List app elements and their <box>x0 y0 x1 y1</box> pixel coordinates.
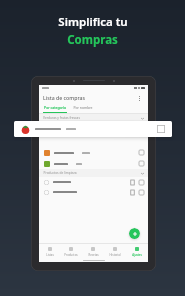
button[interactable] <box>39 158 148 169</box>
button[interactable]: Listas <box>39 244 60 259</box>
staticText: Recetas <box>88 253 99 257</box>
staticText: Simplifica tu <box>58 14 128 30</box>
staticText: Historial <box>109 253 121 257</box>
staticText: Verduras y frutas frescas <box>43 116 80 120</box>
button[interactable]: Por categoría <box>43 104 67 113</box>
staticText: Productos de limpieza <box>43 171 77 175</box>
button[interactable] <box>39 122 148 133</box>
button[interactable] <box>39 177 148 187</box>
staticText: Lista de compras <box>43 94 85 101</box>
staticText: Ajustes <box>132 253 142 257</box>
staticText: Por categoría <box>44 105 66 110</box>
staticText: Por nombre <box>73 105 93 110</box>
button[interactable]: Add item <box>129 228 140 239</box>
button[interactable] <box>14 121 172 137</box>
button[interactable]: Ajustes <box>126 244 148 259</box>
button[interactable] <box>39 147 148 158</box>
button[interactable]: Historial <box>104 244 126 259</box>
button[interactable]: Recetas <box>82 244 104 259</box>
button[interactable]: Por nombre <box>73 104 93 113</box>
button[interactable] <box>39 187 148 197</box>
staticText: Compras <box>67 32 118 48</box>
button[interactable]: More options <box>134 93 144 103</box>
staticText: Listas <box>46 253 54 257</box>
button[interactable]: Productos <box>60 244 82 259</box>
staticText: Productos <box>64 253 78 257</box>
